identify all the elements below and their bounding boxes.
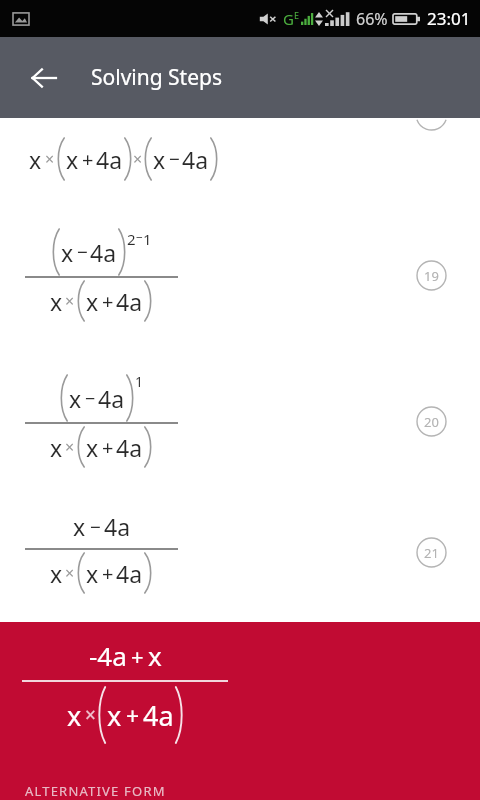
button[interactable]: Step 19 [416, 260, 447, 291]
staticText: + [131, 641, 144, 671]
staticText: x [66, 144, 79, 175]
staticText: x [69, 383, 82, 414]
staticText: 1 [143, 229, 152, 249]
staticText: 4a [104, 511, 131, 542]
staticText: × [133, 148, 143, 170]
staticText: x [61, 237, 74, 268]
staticText: 66% [356, 8, 388, 30]
staticText: + [102, 288, 114, 315]
staticText: − [136, 229, 143, 245]
staticText: 23:01 [427, 7, 471, 30]
staticText: G [283, 9, 294, 29]
button[interactable]: Step 20 [416, 406, 447, 437]
staticText: + [126, 700, 140, 731]
staticText: x [153, 144, 166, 175]
staticText: x [86, 432, 99, 463]
staticText: x [86, 558, 99, 589]
staticText: 4a [143, 697, 174, 734]
staticText: x [148, 638, 162, 673]
staticText: -4a [89, 638, 127, 673]
staticText: × [65, 290, 75, 312]
button[interactable]: Back [18, 52, 70, 104]
staticText: 19 [424, 267, 439, 285]
staticText: 21 [424, 544, 439, 562]
staticText: + [82, 146, 94, 173]
staticText: − [169, 146, 180, 172]
staticText: 2 [127, 229, 136, 249]
staticText: E [294, 9, 300, 21]
staticText: × [45, 148, 55, 170]
staticText: 4a [90, 237, 117, 268]
staticText: 1 [135, 372, 144, 391]
staticText: x [50, 558, 63, 589]
staticText: x [29, 144, 42, 175]
staticText: x [50, 432, 63, 463]
staticText: 4a [182, 144, 209, 175]
staticText: x [73, 511, 86, 542]
staticText: ALTERNATIVE FORM [25, 782, 166, 800]
staticText: × [85, 702, 96, 728]
staticText: − [85, 386, 96, 411]
staticText: 4a [116, 286, 143, 317]
button[interactable]: x [0, 350, 480, 492]
button[interactable]: Step 21 [416, 537, 447, 568]
button[interactable]: x [0, 118, 480, 200]
staticText: − [77, 239, 88, 265]
staticText: × [65, 562, 75, 584]
staticText: 20 [424, 413, 439, 431]
staticText: 4a [96, 144, 123, 175]
staticText: × [65, 436, 75, 458]
staticText: 4a [116, 558, 143, 589]
staticText: x [67, 697, 82, 734]
button[interactable]: x [0, 492, 480, 612]
staticText: 4a [116, 432, 143, 463]
staticText: Solving Steps [91, 63, 223, 92]
button[interactable]: x [0, 200, 480, 350]
button[interactable]: -4a [0, 622, 480, 800]
staticText: 4a [98, 383, 125, 414]
staticText: + [102, 560, 114, 587]
staticText: x [86, 286, 99, 317]
staticText: − [90, 514, 101, 540]
staticText: + [102, 434, 114, 461]
staticText: x [50, 286, 63, 317]
staticText: x [107, 697, 122, 734]
